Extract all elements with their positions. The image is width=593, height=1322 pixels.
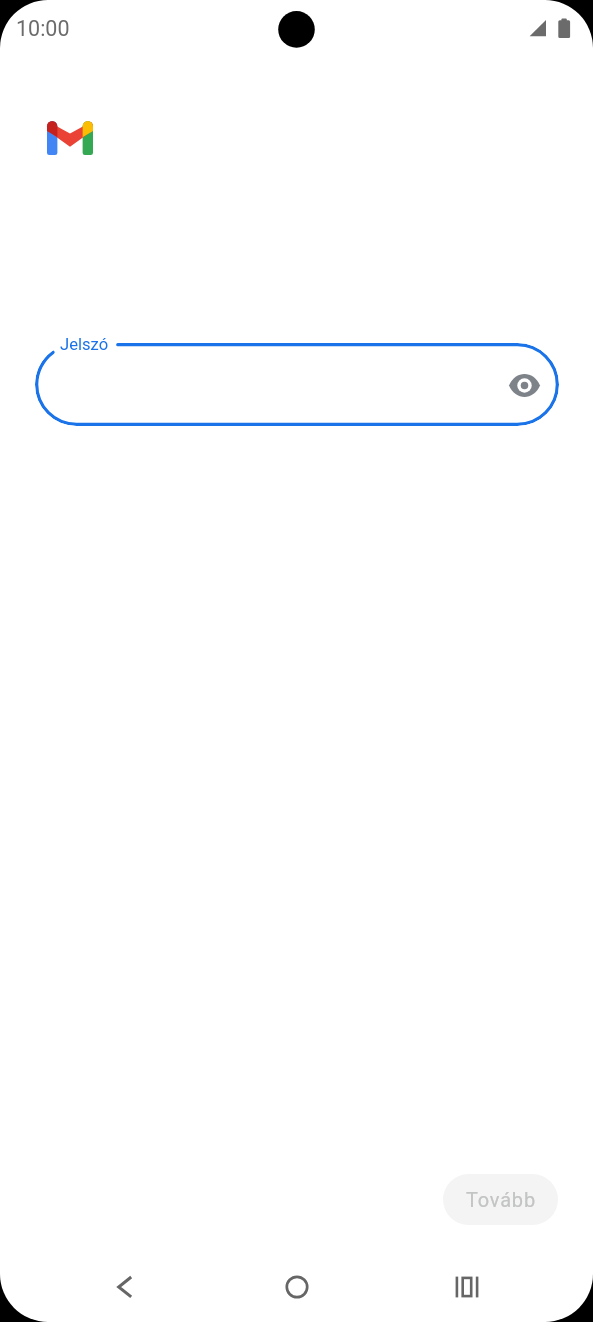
button[interactable]: Tovább bbox=[443, 1174, 558, 1225]
staticText: 10:00 bbox=[16, 16, 70, 41]
button[interactable]: Recent apps bbox=[437, 1257, 497, 1317]
staticText: Jelszó bbox=[60, 335, 109, 354]
button[interactable]: Show password bbox=[502, 363, 546, 407]
staticText: Tovább bbox=[466, 1188, 536, 1211]
button[interactable]: Jelszó bbox=[35, 343, 559, 426]
button[interactable]: Home bbox=[267, 1257, 327, 1317]
button[interactable]: Back bbox=[95, 1257, 155, 1317]
